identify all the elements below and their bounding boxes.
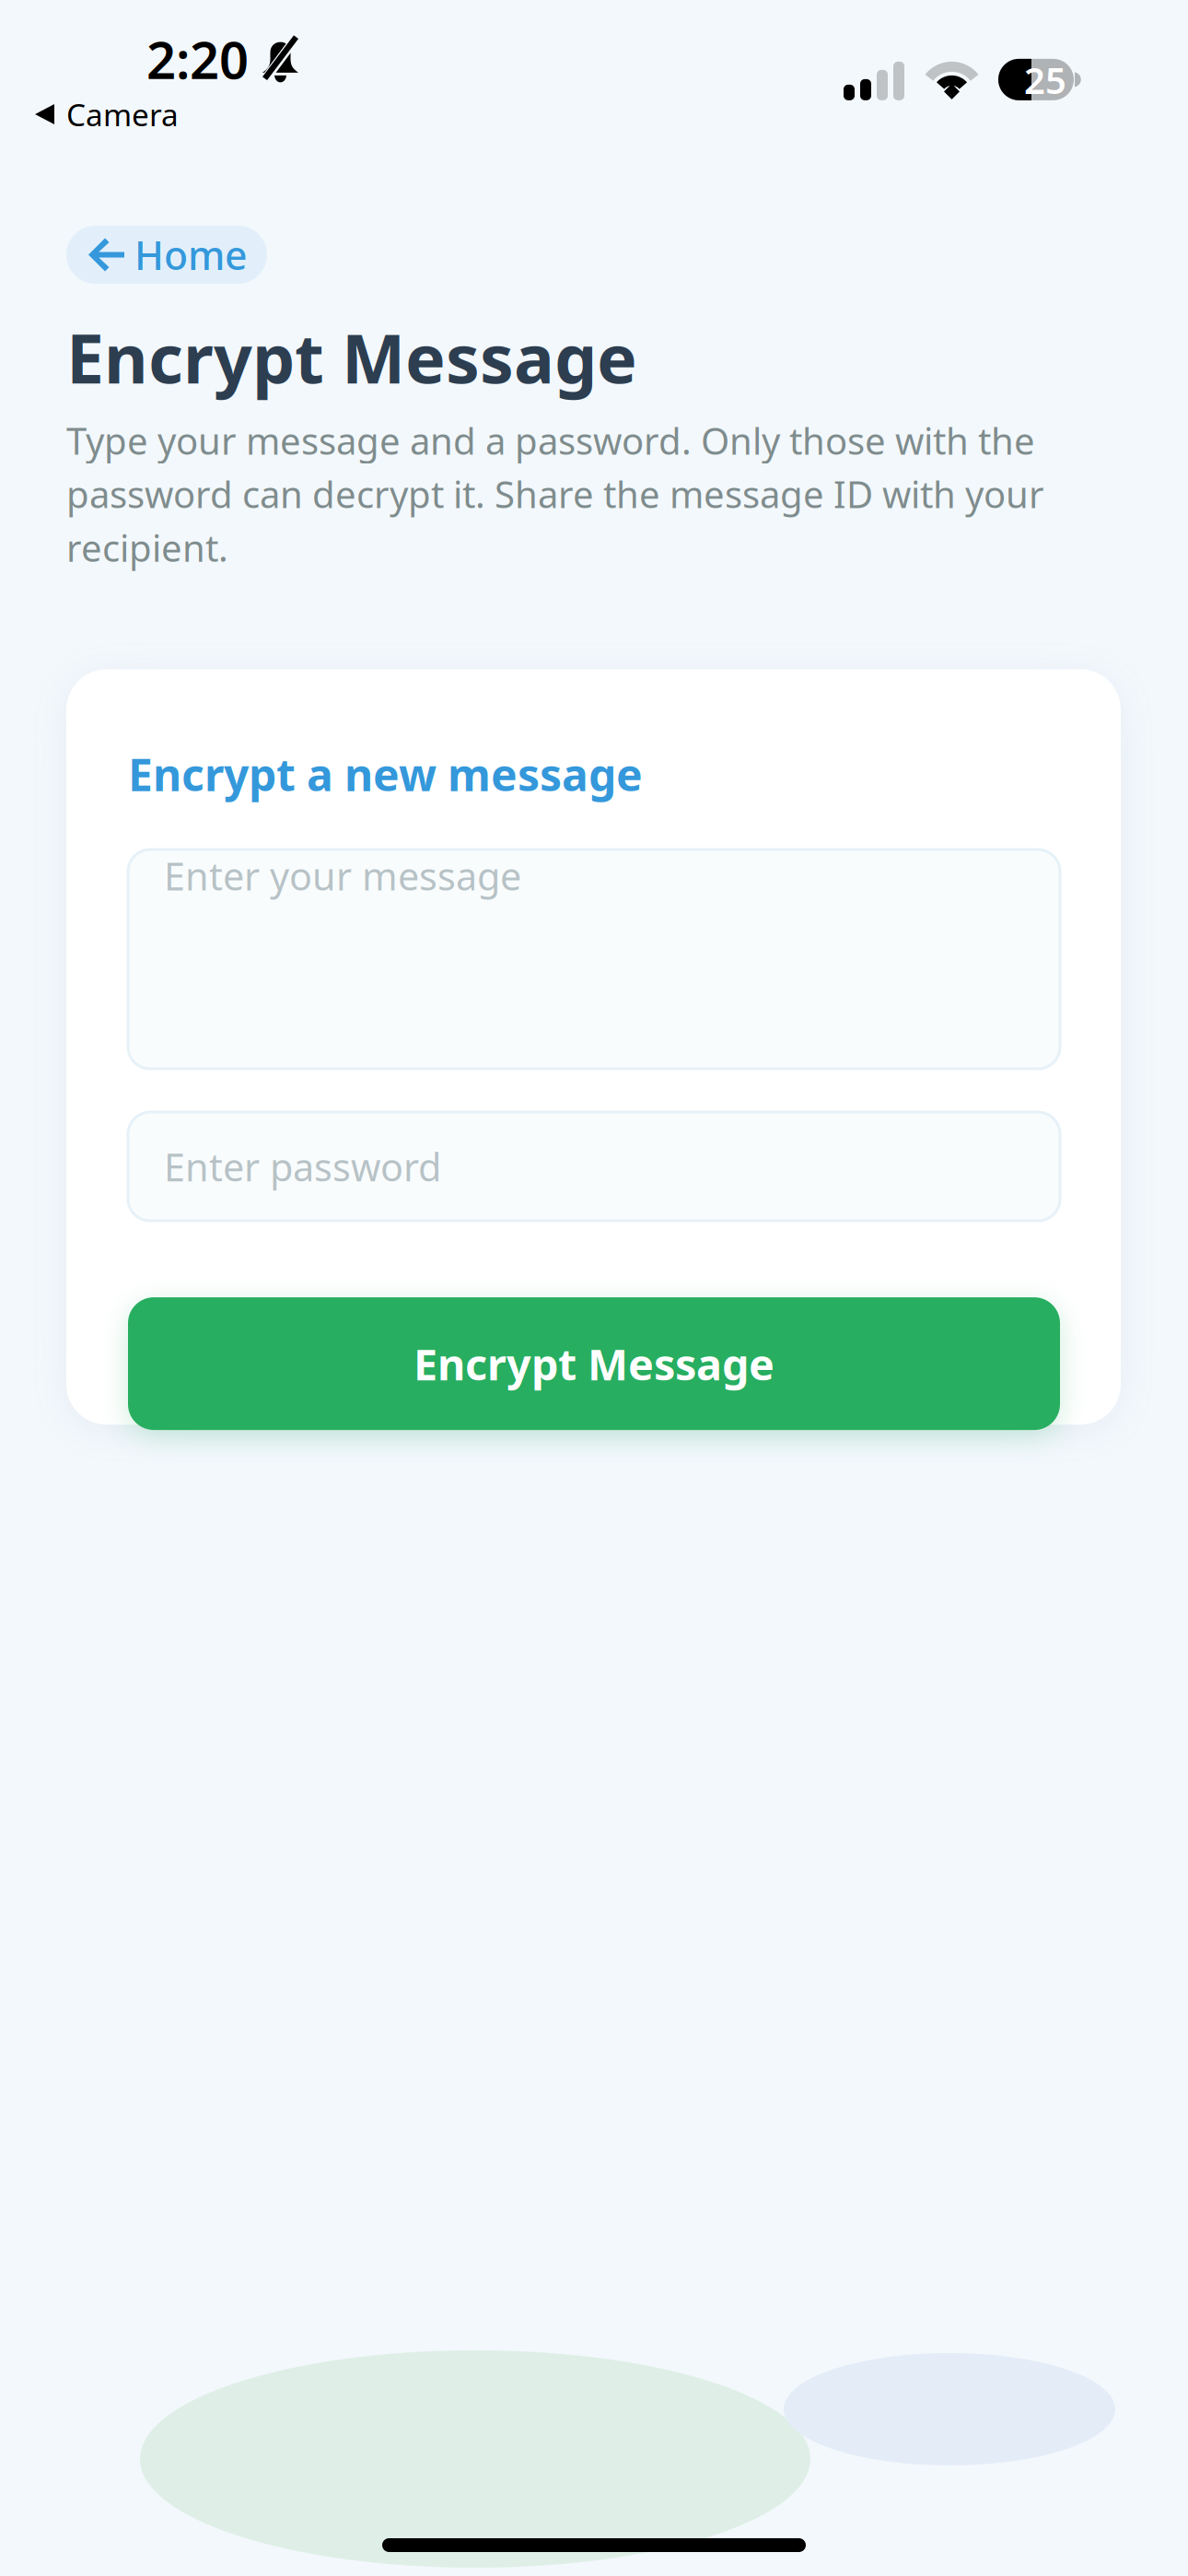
button[interactable]: Encrypt Message [128,1297,1060,1430]
staticText: Encrypt a new message [128,745,643,803]
staticText: Type your message and a password. Only t… [66,416,1044,572]
button[interactable]: Home [66,226,267,284]
staticText: Camera [66,94,179,135]
staticText: Enter password [164,1141,441,1192]
staticText: Enter your message [164,850,521,901]
staticText: 2:20 [146,25,249,93]
staticText: 25 [1024,55,1066,104]
staticText: Encrypt Message [66,312,637,402]
staticText: Encrypt Message [413,1335,775,1392]
staticText: Home [134,229,247,281]
